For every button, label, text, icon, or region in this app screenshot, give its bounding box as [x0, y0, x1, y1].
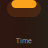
button[interactable]: Action [11, 0, 36, 8]
staticText: Time [16, 36, 32, 45]
